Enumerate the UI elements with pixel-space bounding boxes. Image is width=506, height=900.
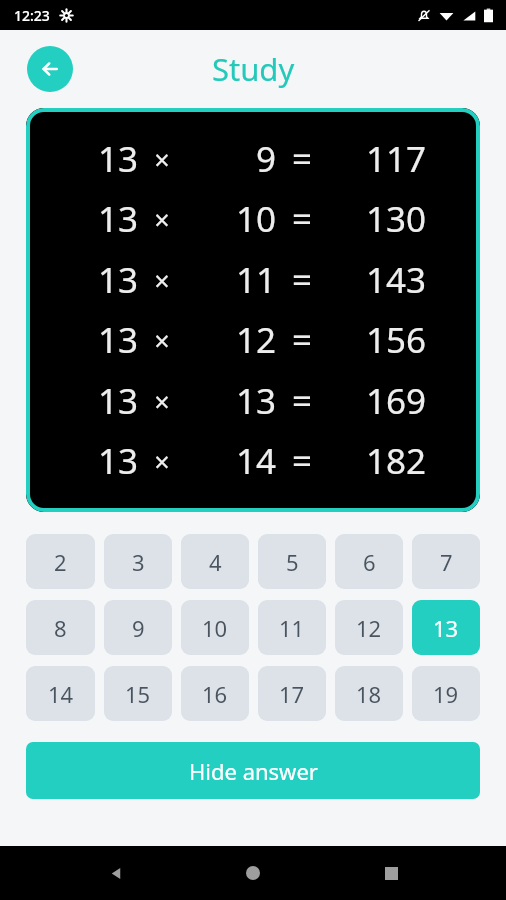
staticText: 11 [279,613,305,643]
button[interactable]: 9 [104,600,172,655]
staticText: 13 [433,613,459,643]
staticText: 13 [26,195,138,243]
staticText: 4 [209,547,222,577]
button[interactable]: 15 [104,666,172,721]
staticText: Hide answer [189,756,318,786]
staticText: 3 [132,547,145,577]
staticText: × [138,262,186,299]
staticText: 182 [328,437,426,485]
staticText: 2 [54,547,67,577]
button[interactable]: 10 [181,600,249,655]
button[interactable]: 11 [258,600,326,655]
staticText: 19 [433,679,459,709]
staticText: 13 [26,437,138,485]
staticText: 11 [186,256,276,304]
staticText: = [276,256,328,304]
staticText: 143 [328,256,426,304]
staticText: 156 [328,316,426,364]
staticText: × [138,322,186,359]
button[interactable]: 4 [181,534,249,589]
button[interactable]: 14 [26,666,95,721]
staticText: 18 [356,679,382,709]
button[interactable]: 16 [181,666,249,721]
staticText: = [276,135,328,183]
staticText: 5 [286,547,299,577]
button[interactable]: 8 [26,600,95,655]
staticText: 12:23 [14,6,50,25]
staticText: 10 [202,613,228,643]
staticText: 13 [26,256,138,304]
button[interactable]: 5 [258,534,326,589]
button[interactable]: 3 [104,534,172,589]
staticText: × [138,383,186,420]
staticText: Study [212,48,295,90]
button[interactable]: 13 [412,600,480,655]
button[interactable]: Home [231,851,275,895]
button[interactable]: 12 [335,600,403,655]
staticText: 13 [26,135,138,183]
staticText: × [138,201,186,238]
staticText: 13 [26,316,138,364]
staticText: × [138,443,186,480]
staticText: 9 [186,135,276,183]
button[interactable]: Back [94,851,138,895]
button[interactable]: Back [27,46,73,92]
button[interactable]: 19 [412,666,480,721]
staticText: = [276,377,328,425]
staticText: 169 [328,377,426,425]
button[interactable]: Recent apps [369,851,413,895]
button[interactable]: 17 [258,666,326,721]
staticText: 14 [186,437,276,485]
button[interactable]: 7 [412,534,480,589]
staticText: 15 [125,679,151,709]
staticText: 12 [186,316,276,364]
staticText: 14 [48,679,74,709]
staticText: × [138,141,186,178]
staticText: 7 [440,547,453,577]
staticText: 130 [328,195,426,243]
staticText: 117 [328,135,426,183]
staticText: = [276,316,328,364]
button[interactable]: 18 [335,666,403,721]
staticText: 17 [279,679,305,709]
staticText: 6 [363,547,376,577]
staticText: = [276,437,328,485]
staticText: 8 [54,613,67,643]
staticText: 16 [202,679,228,709]
staticText: 9 [132,613,145,643]
button[interactable]: Hide answer [26,742,480,799]
button[interactable]: 6 [335,534,403,589]
staticText: 13 [26,377,138,425]
staticText: 13 [186,377,276,425]
staticText: = [276,195,328,243]
button[interactable]: 2 [26,534,95,589]
staticText: 12 [356,613,382,643]
staticText: 10 [186,195,276,243]
